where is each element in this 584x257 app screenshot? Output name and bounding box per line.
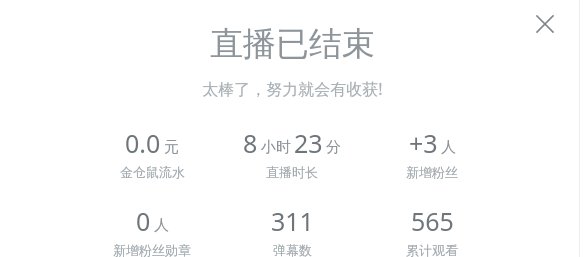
button[interactable]: 8 — [230, 126, 354, 180]
staticText: 人 — [441, 138, 456, 157]
staticText: 311 — [271, 204, 314, 238]
button[interactable]: 565 — [370, 204, 494, 257]
staticText: 金仓鼠流水 — [120, 164, 185, 180]
staticText: 分 — [326, 138, 341, 157]
staticText: 0.0 — [125, 126, 161, 160]
button[interactable]: +3 — [370, 126, 494, 180]
staticText: 弹幕数 — [273, 242, 312, 257]
staticText: 元 — [164, 138, 179, 157]
staticText: 23 — [294, 126, 323, 160]
staticText: 直播已结束 — [210, 23, 375, 65]
staticText: 累计观看 — [406, 242, 458, 257]
staticText: 直播时长 — [266, 164, 318, 180]
button[interactable]: 0.0 — [90, 126, 214, 180]
staticText: 小时 — [261, 138, 291, 157]
staticText: 565 — [411, 204, 454, 238]
staticText: 新增粉丝勋章 — [113, 242, 191, 257]
button[interactable]: 0 — [90, 204, 214, 257]
staticText: +3 — [409, 126, 438, 160]
staticText: 新增粉丝 — [406, 164, 458, 180]
staticText: 人 — [154, 216, 169, 235]
staticText: 太棒了，努力就会有收获! — [202, 78, 383, 100]
button[interactable]: 311 — [230, 204, 354, 257]
button[interactable]: Close — [527, 6, 563, 42]
staticText: 8 — [243, 126, 258, 160]
staticText: 0 — [136, 204, 151, 238]
